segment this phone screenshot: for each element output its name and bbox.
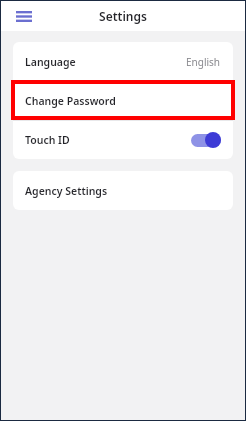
button[interactable]: Language (13, 42, 233, 81)
button[interactable]: Change Password (13, 81, 233, 120)
staticText: Touch ID (25, 133, 70, 147)
staticText: Change Password (25, 94, 116, 108)
button[interactable]: Touch ID toggle, on (191, 132, 221, 148)
staticText: Language (25, 55, 76, 69)
button[interactable]: Touch ID (13, 120, 233, 159)
staticText: Agency Settings (25, 184, 108, 198)
staticText: English (186, 55, 221, 69)
button[interactable]: Open navigation menu (12, 5, 36, 27)
button[interactable]: Agency Settings (13, 171, 233, 210)
staticText: Settings (99, 8, 147, 24)
